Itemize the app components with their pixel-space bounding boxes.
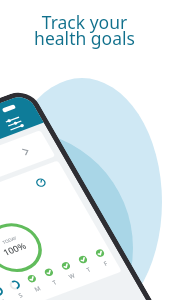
staticText: Track your health goals — [34, 10, 135, 50]
button[interactable]: Health goals app preview — [0, 56, 169, 300]
